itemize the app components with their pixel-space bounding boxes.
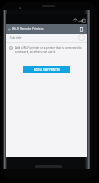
button[interactable]: Add printer (77, 25, 86, 34)
button[interactable]: Searching for printers (78, 34, 85, 41)
staticText: Sub title (10, 36, 22, 40)
staticText: Wi-Fi Remote Printers (12, 27, 44, 31)
staticText: Add a Wi-Fi printer or a printer that is… (15, 46, 84, 54)
button[interactable]: ADD A NEW PRINTER (23, 66, 70, 73)
staticText: ADD A NEW PRINTER (34, 68, 60, 72)
button[interactable]: Navigate up (6, 24, 12, 34)
